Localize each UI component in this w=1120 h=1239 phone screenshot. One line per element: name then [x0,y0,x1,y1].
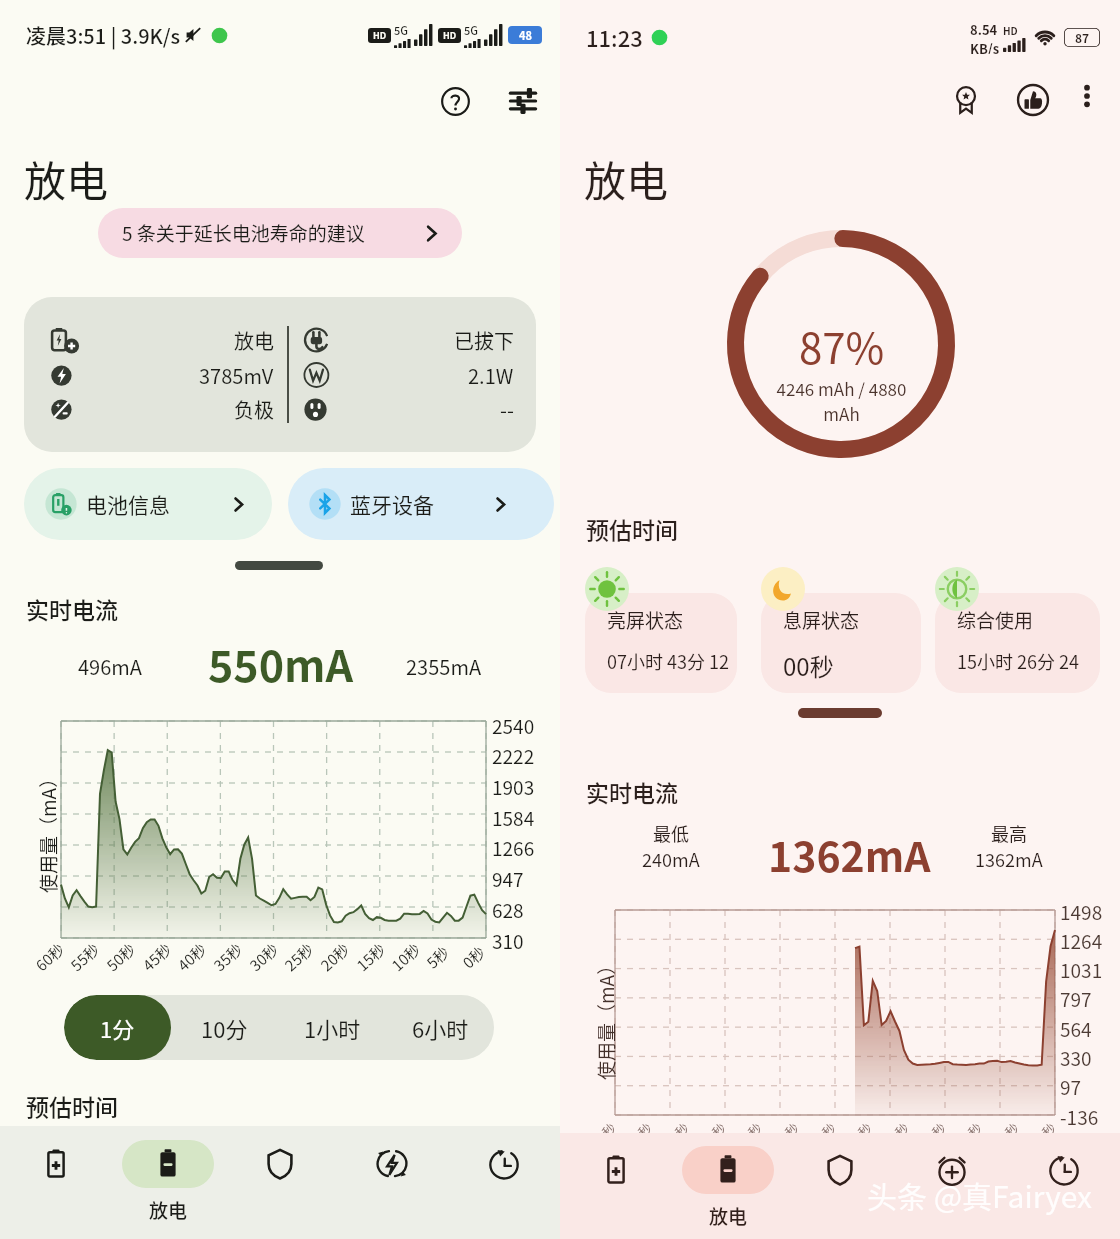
staticText: 秒 [670,1118,693,1141]
staticText: 3785mV [199,361,274,390]
staticText: 310 [492,927,524,955]
staticText: 秒 [927,1118,950,1141]
staticText: 564 [1060,1015,1092,1043]
button[interactable]: 1小时 [278,995,386,1060]
staticText: HD [1003,23,1018,37]
staticText: 秒 [743,1118,766,1141]
staticText: 00秒 [783,648,834,683]
button[interactable]: 综合使用 [935,593,1100,693]
staticText: 1903 [492,773,535,801]
staticText: 4246 mAh / 4880 mAh [769,376,914,426]
staticText: 60秒 [31,938,69,976]
staticText: 1362mA [975,846,1043,872]
button[interactable]: 1分 [64,995,171,1060]
button[interactable]: Charging [0,1126,112,1239]
button[interactable]: Like [1007,74,1059,126]
staticText: 放电 [709,1202,748,1230]
staticText: 实时电流 [26,592,118,625]
staticText: 45秒 [138,938,176,976]
staticText: 496mA [78,652,142,681]
staticText: 放电 [584,148,669,209]
staticText: 2540 [492,712,535,740]
button[interactable]: 6小时 [386,995,494,1060]
staticText: 10秒 [387,938,425,976]
staticText: 已拔下 [454,326,514,355]
staticText: 实时电流 [586,775,678,808]
staticText: 15秒 [352,938,390,976]
staticText: 预估时间 [586,512,678,545]
staticText: 秒 [707,1118,730,1141]
staticText: 秒 [633,1118,656,1141]
staticText: 1362mA [768,824,931,883]
staticText: 秒 [817,1118,840,1141]
staticText: 综合使用 [957,606,1034,634]
staticText: HD [373,29,387,42]
staticText: -- [500,395,514,424]
staticText: 947 [492,865,524,893]
staticText: 使用量（mA） [592,955,620,1080]
button[interactable]: Settings [498,76,548,126]
staticText: 07小时 43分 12 [607,648,730,674]
staticText: 87 [1075,29,1090,46]
button[interactable]: History [1008,1133,1120,1239]
staticText: 87% [799,315,885,376]
button[interactable]: 息屏状态 [761,593,921,693]
button[interactable]: Award [940,74,992,126]
staticText: 48 [519,27,532,43]
staticText: 放电 [24,148,109,209]
button[interactable]: History [448,1126,560,1239]
staticText: 1266 [492,834,535,862]
staticText: 797 [1060,985,1092,1013]
button[interactable]: Protect [224,1126,336,1239]
staticText: 5 条关于延长电池寿命的建议 [122,219,365,247]
button[interactable]: Cycle [336,1126,448,1239]
staticText: 秒 [597,1118,620,1141]
staticText: 25秒 [280,938,318,976]
staticText: 40秒 [173,938,211,976]
button[interactable]: Protect [784,1133,896,1239]
button[interactable]: More options [1065,74,1109,118]
staticText: 负极 [234,395,274,424]
button[interactable]: Charging [560,1133,672,1239]
staticText: 30秒 [245,938,283,976]
staticText: 最高 [991,820,1027,846]
staticText: 5G [394,22,408,38]
staticText: 35秒 [209,938,247,976]
staticText: 放电 [234,326,274,355]
button[interactable]: 放电 [672,1133,784,1239]
staticText: 240mA [642,846,700,872]
staticText: 2222 [492,742,535,770]
staticText: 放电 [149,1196,188,1224]
button[interactable]: 5 条关于延长电池寿命的建议 [98,208,462,258]
staticText: 1小时 [304,1012,361,1044]
button[interactable]: 蓝牙设备 [288,468,554,540]
staticText: 5G [464,22,478,38]
staticText: 电池信息 [86,489,170,519]
button[interactable]: 放电 [112,1126,224,1239]
button[interactable]: Alarm [896,1133,1008,1239]
staticText: 秒 [1037,1118,1060,1141]
staticText: 亮屏状态 [607,606,684,634]
staticText: -136 [1060,1103,1099,1131]
button[interactable]: 电池信息 [24,468,272,540]
button[interactable]: 10分 [171,995,278,1060]
staticText: KB/s [970,39,1000,54]
button[interactable]: Help [430,76,480,126]
staticText: 1584 [492,804,535,832]
staticText: 15小时 26分 24 [957,648,1080,674]
staticText: 0秒 [458,941,490,973]
staticText: 使用量（mA） [34,768,62,893]
staticText: 秒 [853,1118,876,1141]
staticText: 1分 [100,1012,135,1044]
staticText: 330 [1060,1044,1092,1072]
staticText: 55秒 [66,938,104,976]
staticText: 1264 [1060,927,1103,955]
button[interactable]: 亮屏状态 [585,593,737,693]
staticText: 预估时间 [26,1089,118,1122]
staticText: 8.54 [970,20,998,39]
staticText: 最低 [653,820,689,846]
staticText: 头条 @真Fairyex [867,1173,1092,1216]
staticText: 550mA [208,632,354,694]
staticText: 2355mA [406,652,482,681]
staticText: 1031 [1060,956,1103,984]
